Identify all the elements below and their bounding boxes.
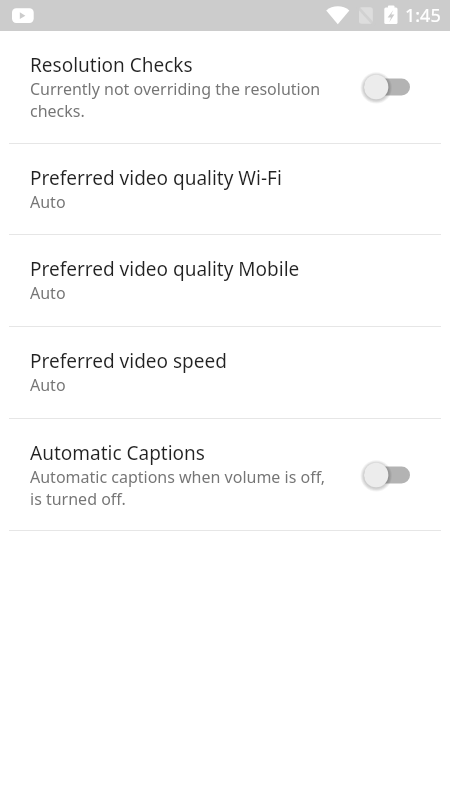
- staticText: Currently not overriding the resolution …: [30, 78, 335, 122]
- staticText: Automatic Captions: [30, 440, 205, 466]
- staticText: Preferred video quality Mobile: [30, 256, 300, 282]
- staticText: 1:45: [405, 3, 441, 28]
- button[interactable]: Resolution Checks: [0, 31, 450, 143]
- staticText: Automatic captions when volume is off, i…: [30, 466, 335, 510]
- staticText: Auto: [30, 191, 66, 213]
- button[interactable]: Toggle Automatic Captions: [349, 460, 411, 490]
- staticText: Auto: [30, 282, 66, 304]
- staticText: Auto: [30, 374, 66, 396]
- staticText: Preferred video quality Wi-Fi: [30, 165, 282, 191]
- button[interactable]: Preferred video quality Mobile: [0, 235, 450, 326]
- button[interactable]: Automatic Captions: [0, 419, 450, 530]
- button[interactable]: Preferred video quality Wi-Fi: [0, 144, 450, 234]
- button[interactable]: Toggle Resolution Checks: [349, 72, 411, 102]
- button[interactable]: Preferred video speed: [0, 327, 450, 418]
- staticText: Preferred video speed: [30, 348, 227, 374]
- staticText: Resolution Checks: [30, 52, 193, 78]
